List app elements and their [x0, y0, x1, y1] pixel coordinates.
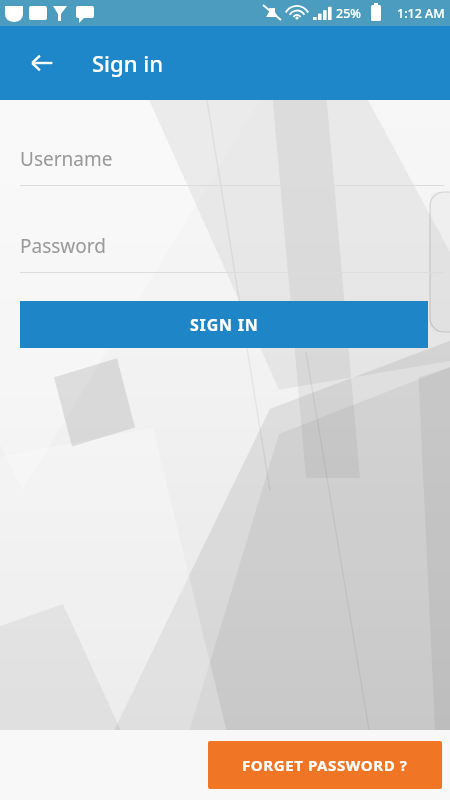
staticText: FORGET PASSWORD ?	[242, 755, 408, 775]
button[interactable]: Back	[18, 39, 66, 87]
button[interactable]: SIGN IN	[20, 301, 428, 348]
staticText: 25%	[336, 5, 361, 22]
staticText: 1:12 AM	[397, 5, 445, 22]
button[interactable]: FORGET PASSWORD ?	[208, 741, 442, 789]
button[interactable]: Username	[0, 100, 450, 186]
staticText: SIGN IN	[190, 314, 259, 336]
staticText: Password	[20, 233, 106, 259]
button[interactable]: Password	[0, 186, 450, 273]
staticText: Sign in	[92, 48, 163, 78]
staticText: Username	[20, 146, 113, 172]
